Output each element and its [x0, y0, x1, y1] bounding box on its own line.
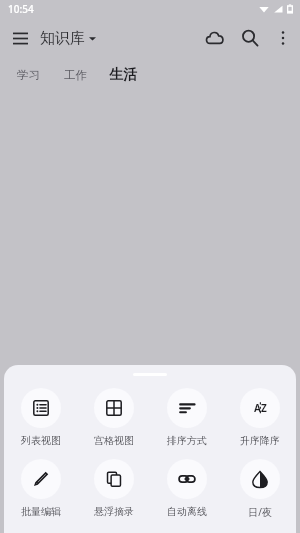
button[interactable]: A — [223, 386, 296, 449]
staticText: 自动离线 — [167, 505, 207, 518]
staticText: A — [254, 401, 261, 415]
button[interactable]: 工作 — [61, 65, 90, 85]
staticText: 排序方式 — [167, 434, 207, 447]
staticText: 升序降序 — [240, 434, 280, 447]
button[interactable]: Search — [232, 20, 268, 56]
button[interactable]: 悬浮摘录 — [77, 457, 150, 520]
button[interactable]: 学习 — [14, 65, 43, 85]
button[interactable]: 知识库 — [40, 29, 96, 48]
staticText: 生活 — [109, 66, 137, 84]
button[interactable]: Cloud sync — [196, 20, 232, 56]
button[interactable]: Menu — [0, 18, 40, 58]
button[interactable]: 自动离线 — [150, 457, 223, 520]
staticText: 日/夜 — [248, 505, 272, 519]
button[interactable]: 日/夜 — [223, 457, 296, 521]
staticText: 悬浮摘录 — [94, 505, 134, 518]
staticText: 工作 — [64, 68, 87, 82]
button[interactable]: 生活 — [106, 63, 140, 87]
button[interactable]: 列表视图 — [4, 386, 77, 449]
staticText: 知识库 — [40, 29, 85, 48]
button[interactable]: 批量编辑 — [4, 457, 77, 520]
staticText: 批量编辑 — [21, 505, 61, 518]
staticText: 宫格视图 — [94, 434, 134, 447]
button[interactable]: 排序方式 — [150, 386, 223, 449]
staticText: Z — [261, 401, 267, 415]
button[interactable]: More options — [268, 23, 298, 53]
staticText: 列表视图 — [21, 434, 61, 447]
button[interactable]: 宫格视图 — [77, 386, 150, 449]
staticText: 10:54 — [8, 2, 34, 16]
staticText: 学习 — [17, 68, 40, 82]
